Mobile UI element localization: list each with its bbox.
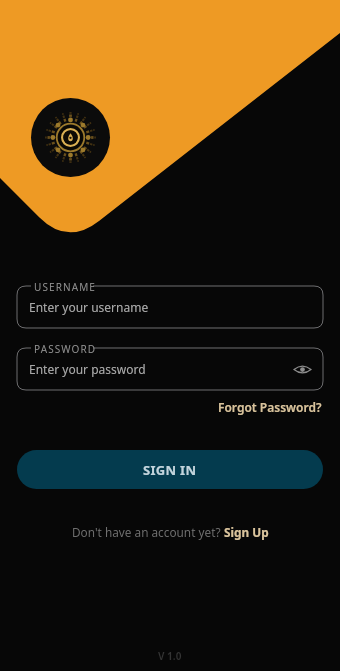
- staticText: Enter your password: [29, 361, 146, 377]
- staticText: Forgot Password?: [218, 399, 322, 415]
- staticText: PASSWORD: [34, 342, 97, 356]
- button[interactable]: SIGN IN: [17, 450, 323, 489]
- staticText: Don't have an account yet?: [72, 524, 224, 540]
- staticText: Sign Up: [224, 524, 269, 540]
- button[interactable]: USERNAME: [17, 286, 323, 328]
- staticText: Enter your username: [29, 299, 149, 315]
- button[interactable]: PASSWORD: [17, 348, 323, 390]
- staticText: USERNAME: [34, 280, 96, 294]
- button[interactable]: Show password: [290, 357, 314, 381]
- staticText: SIGN IN: [143, 461, 197, 479]
- button[interactable]: Sign Up: [224, 524, 269, 540]
- button[interactable]: Forgot Password?: [218, 399, 322, 415]
- staticText: V 1.0: [158, 649, 182, 663]
